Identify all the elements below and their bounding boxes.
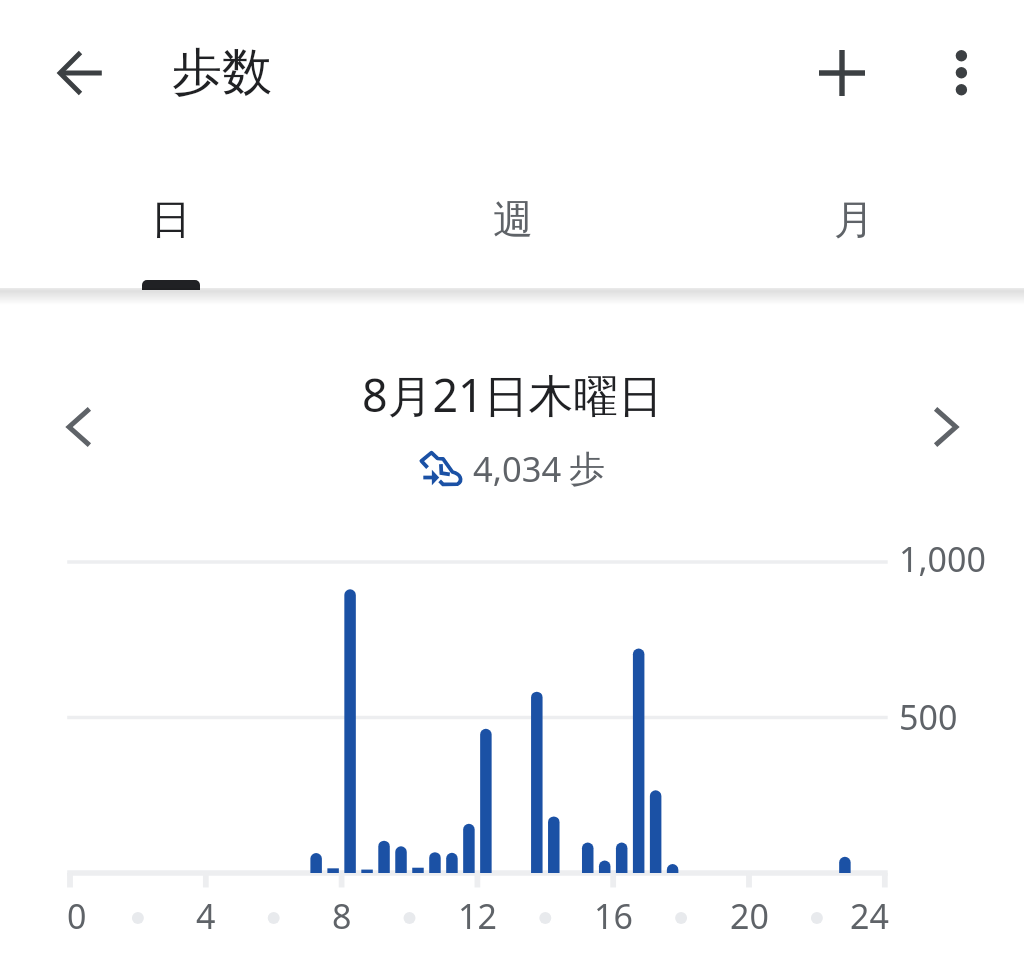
button[interactable]: Next day [905,387,985,467]
staticText: 歩 [569,446,605,491]
staticText: 4 [196,893,216,939]
button[interactable]: 週 [342,146,683,290]
staticText: 12 [458,893,497,939]
staticText: 日 [151,194,191,244]
button[interactable]: Back [41,35,117,111]
staticText: 1,000 [899,536,986,582]
staticText: 500 [899,694,958,740]
staticText: 0 [67,893,87,939]
button[interactable]: 日 [0,146,342,290]
staticText: 歩数 [172,41,272,104]
button[interactable]: 月 [683,146,1024,290]
staticText: 16 [594,893,633,939]
staticText: 8月21日木曜日 [362,364,663,425]
staticText: 24 [850,893,889,939]
staticText: 20 [730,893,769,939]
staticText: 4,034 [473,445,562,492]
button[interactable]: Previous day [40,387,120,467]
staticText: 週 [493,194,533,244]
staticText: 月 [834,194,874,244]
button[interactable]: More options [923,35,999,111]
staticText: 8 [332,893,352,939]
button[interactable]: Add [804,35,880,111]
